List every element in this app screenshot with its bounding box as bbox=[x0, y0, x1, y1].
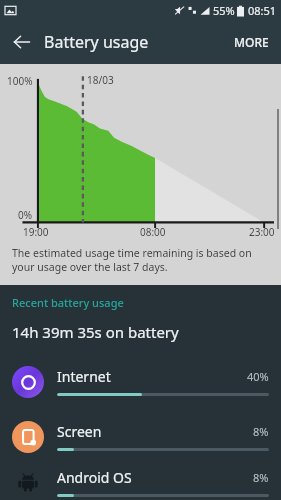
staticText: 18/03 bbox=[87, 73, 114, 87]
button[interactable]: Android OS bbox=[0, 464, 281, 500]
staticText: 08:51 bbox=[248, 3, 277, 18]
staticText: 100% bbox=[7, 74, 33, 88]
button[interactable]: Screen bbox=[0, 409, 281, 464]
staticText: Battery usage bbox=[44, 31, 149, 53]
staticText: 14h 39m 35s on battery bbox=[12, 322, 179, 342]
staticText: Screen bbox=[57, 422, 253, 441]
staticText: 55% bbox=[213, 3, 235, 18]
staticText: 8% bbox=[253, 470, 269, 485]
button[interactable]: Back bbox=[0, 20, 44, 64]
staticText: 8% bbox=[253, 424, 269, 439]
staticText: 23:00 bbox=[249, 225, 275, 239]
staticText: The estimated usage time remaining is ba… bbox=[12, 246, 265, 274]
staticText: 0% bbox=[18, 208, 33, 222]
staticText: Internet bbox=[57, 367, 247, 386]
staticText: MORE bbox=[234, 34, 269, 50]
button[interactable]: Internet bbox=[0, 354, 281, 409]
button[interactable]: MORE bbox=[222, 20, 281, 64]
staticText: 19:00 bbox=[23, 225, 49, 239]
staticText: 40% bbox=[247, 369, 269, 384]
staticText: Android OS bbox=[57, 468, 253, 487]
staticText: 08:00 bbox=[140, 225, 166, 239]
staticText: Recent battery usage bbox=[12, 295, 124, 310]
